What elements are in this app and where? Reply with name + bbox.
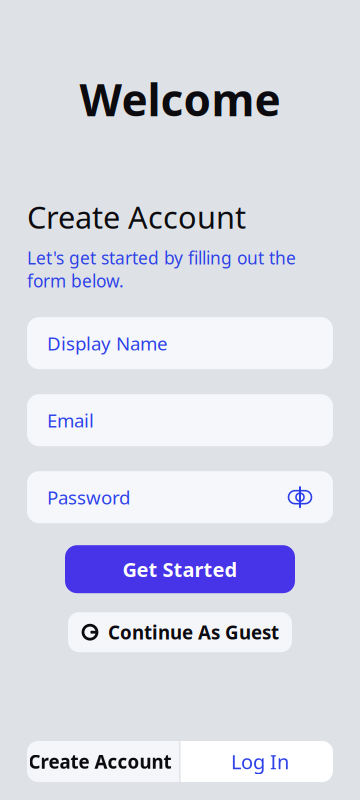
staticText: Password — [47, 485, 130, 510]
staticText: Get Started — [122, 556, 237, 582]
button[interactable]: Show password — [287, 484, 313, 510]
button[interactable]: Log In — [180, 741, 339, 782]
staticText: Email — [47, 408, 94, 433]
button[interactable]: Continue As Guest — [68, 612, 292, 652]
staticText: Display Name — [47, 331, 168, 356]
button[interactable]: Create Account — [20, 741, 179, 782]
staticText: Welcome — [79, 70, 280, 128]
staticText: Log In — [231, 748, 289, 775]
button[interactable]: Get Started — [65, 545, 295, 593]
staticText: Create Account — [28, 749, 171, 774]
staticText: Let's get started by filling out the for… — [27, 246, 296, 292]
staticText: Create Account — [27, 196, 246, 237]
staticText: Continue As Guest — [108, 620, 279, 645]
